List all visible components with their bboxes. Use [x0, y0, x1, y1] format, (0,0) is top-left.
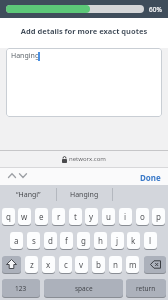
staticText: Add details for more exact quotes: [0, 26, 168, 36]
button[interactable]: [2, 256, 21, 273]
button[interactable]: j: [111, 232, 124, 249]
button[interactable]: f: [60, 232, 73, 249]
staticText: w: [21, 211, 28, 222]
staticText: Hanging: [11, 51, 40, 61]
staticText: n: [113, 259, 118, 270]
staticText: networx.com: [69, 155, 106, 163]
staticText: o: [140, 211, 145, 222]
staticText: space: [75, 284, 93, 293]
button[interactable]: s: [27, 232, 40, 249]
button[interactable]: [144, 256, 166, 273]
staticText: j: [116, 235, 119, 246]
button[interactable]: “Hangi”: [0, 185, 56, 204]
staticText: y: [89, 211, 94, 222]
button[interactable]: Hanging: [6, 48, 162, 117]
staticText: r: [57, 211, 61, 222]
staticText: h: [98, 235, 103, 246]
button[interactable]: return: [126, 279, 166, 297]
button[interactable]: Done: [147, 171, 168, 182]
staticText: 60%: [149, 5, 162, 14]
staticText: s: [32, 235, 36, 246]
button[interactable]: space: [44, 279, 123, 297]
button[interactable]: k: [127, 232, 140, 249]
staticText: p: [156, 211, 161, 222]
button[interactable]: w: [18, 208, 31, 225]
button[interactable]: b: [92, 256, 105, 273]
staticText: z: [30, 259, 34, 270]
button[interactable]: c: [59, 256, 72, 273]
staticText: b: [96, 259, 101, 270]
button[interactable]: d: [44, 232, 57, 249]
staticText: 123: [15, 284, 27, 293]
button[interactable]: v: [75, 256, 88, 273]
staticText: return: [136, 284, 156, 293]
button[interactable]: z: [25, 256, 38, 273]
staticText: k: [131, 235, 136, 246]
button[interactable]: a: [10, 232, 23, 249]
button[interactable]: l: [144, 232, 157, 249]
button[interactable]: Hanging: [56, 185, 112, 204]
button[interactable]: e: [35, 208, 48, 225]
staticText: u: [106, 211, 111, 222]
staticText: v: [79, 259, 84, 270]
button[interactable]: 123: [2, 279, 40, 297]
button[interactable]: g: [77, 232, 90, 249]
staticText: x: [46, 259, 51, 270]
staticText: t: [74, 211, 77, 222]
button[interactable]: r: [52, 208, 65, 225]
staticText: Hanging: [70, 190, 99, 200]
button[interactable]: x: [42, 256, 55, 273]
button[interactable]: u: [102, 208, 115, 225]
button[interactable]: i: [119, 208, 132, 225]
button[interactable]: y: [85, 208, 98, 225]
button[interactable]: o: [136, 208, 149, 225]
staticText: l: [149, 235, 152, 246]
staticText: g: [81, 235, 86, 246]
button[interactable]: n: [109, 256, 122, 273]
staticText: d: [48, 235, 53, 246]
staticText: Done: [140, 172, 161, 183]
staticText: “Hangi”: [16, 190, 41, 200]
button[interactable]: h: [94, 232, 107, 249]
button[interactable]: p: [152, 208, 165, 225]
staticText: c: [64, 259, 68, 270]
staticText: f: [65, 235, 68, 246]
button[interactable]: m: [126, 256, 139, 273]
staticText: m: [129, 259, 137, 270]
staticText: q: [6, 211, 11, 222]
staticText: e: [39, 211, 44, 222]
button[interactable]: q: [2, 208, 15, 225]
button[interactable]: t: [69, 208, 82, 225]
staticText: a: [14, 235, 19, 246]
staticText: i: [124, 211, 127, 222]
